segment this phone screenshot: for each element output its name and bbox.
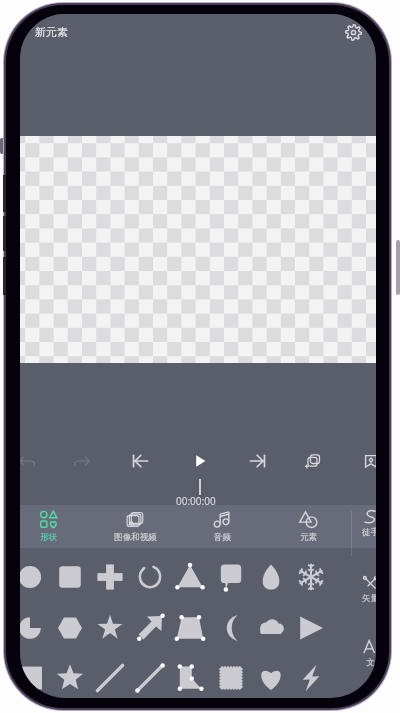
button[interactable]: LINE1 — [91, 659, 129, 697]
button[interactable]: PAC — [20, 609, 49, 647]
button[interactable]: SNOW — [292, 558, 330, 596]
button[interactable]: Bookmark — [352, 442, 376, 480]
button[interactable]: 矢量 — [352, 570, 376, 608]
button[interactable]: 音频 — [186, 505, 258, 548]
button[interactable]: 文 — [352, 634, 376, 672]
button[interactable]: 徒手 — [352, 504, 376, 542]
button[interactable]: CLOUD — [252, 609, 290, 647]
button[interactable]: ARC — [131, 558, 169, 596]
button[interactable]: 图像和视频 — [99, 505, 171, 548]
staticText: 图像和视频 — [114, 532, 157, 543]
staticText: 形状 — [40, 532, 57, 543]
button[interactable]: MOON — [212, 609, 250, 647]
staticText: 新元素 — [35, 25, 68, 39]
button[interactable]: Settings — [340, 19, 366, 45]
staticText: 音频 — [214, 532, 231, 543]
button[interactable]: 元素 — [272, 505, 344, 548]
button[interactable]: BOLT — [292, 659, 330, 697]
button[interactable]: DROP — [252, 558, 290, 596]
button[interactable]: PLUS — [91, 558, 129, 596]
button[interactable]: HEX — [51, 609, 89, 647]
button[interactable]: ARROW — [131, 609, 169, 647]
button[interactable]: TRIANGLE — [171, 558, 209, 596]
button[interactable]: Skip to end — [239, 442, 277, 480]
button[interactable]: TRAPEZ — [171, 609, 209, 647]
button[interactable]: RSQUARE — [51, 558, 89, 596]
button[interactable]: LINE2 — [131, 659, 169, 697]
button[interactable]: Undo — [20, 442, 46, 480]
button[interactable]: STAR5 — [91, 609, 129, 647]
button[interactable]: 形状 — [20, 505, 84, 548]
staticText: 矢量 — [362, 593, 376, 604]
staticText: 元素 — [300, 532, 317, 543]
button[interactable]: Play — [181, 442, 219, 480]
staticText: 徒手 — [362, 527, 376, 538]
button[interactable]: PLAY — [292, 609, 330, 647]
staticText: 文 — [366, 657, 375, 668]
button[interactable]: BUBBLE — [212, 558, 250, 596]
staticText: 00:00:00 — [176, 494, 216, 508]
button[interactable]: STAMP — [212, 659, 250, 697]
button[interactable]: STAR — [51, 659, 89, 697]
button[interactable]: Skip to start — [121, 442, 159, 480]
button[interactable]: HEART — [252, 659, 290, 697]
button[interactable]: Duplicate — [294, 442, 332, 480]
button[interactable]: CIRCLE — [20, 558, 49, 596]
button[interactable]: RECT — [20, 659, 49, 697]
button[interactable]: RTRI — [171, 659, 209, 697]
button[interactable]: Redo — [63, 442, 101, 480]
